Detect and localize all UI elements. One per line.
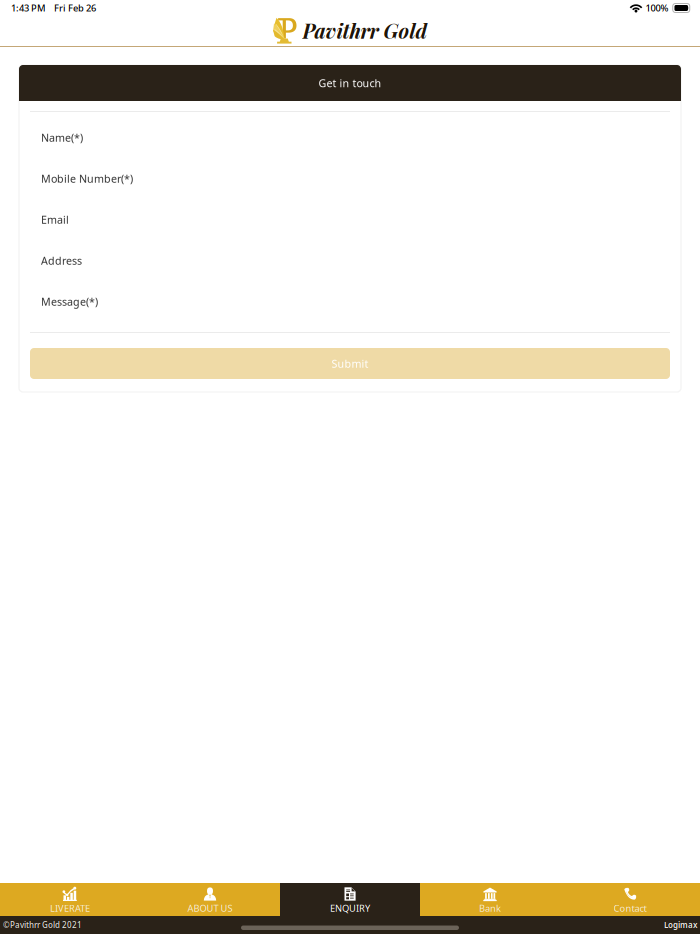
- button[interactable]: Address: [19, 240, 681, 281]
- button[interactable]: Submit: [19, 348, 681, 379]
- staticText: Address: [41, 253, 82, 268]
- button[interactable]: ABOUT US: [140, 883, 280, 916]
- staticText: Submit: [331, 356, 368, 371]
- button[interactable]: ENQUIRY: [280, 883, 420, 916]
- staticText: Email: [41, 212, 69, 227]
- staticText: Pavithrr Gold: [302, 17, 427, 44]
- staticText: Name(*): [41, 130, 83, 145]
- staticText: ABOUT US: [187, 902, 232, 914]
- staticText: Mobile Number(*): [41, 171, 133, 186]
- button[interactable]: Email: [19, 199, 681, 240]
- button[interactable]: Contact: [560, 883, 700, 916]
- staticText: Fri Feb 26: [54, 2, 96, 14]
- staticText: Contact: [613, 902, 646, 914]
- button[interactable]: Name(*): [19, 117, 681, 158]
- staticText: 100%: [645, 2, 668, 14]
- staticText: 1:43 PM: [11, 2, 46, 14]
- staticText: Logimax: [664, 920, 697, 930]
- button[interactable]: Bank: [420, 883, 560, 916]
- staticText: LIVERATE: [50, 902, 90, 914]
- staticText: ENQUIRY: [330, 902, 370, 914]
- button[interactable]: LIVERATE: [0, 883, 140, 916]
- staticText: Message(*): [41, 294, 98, 309]
- button[interactable]: Message(*): [19, 281, 681, 322]
- staticText: ©Pavithrr Gold 2021: [3, 920, 82, 930]
- button[interactable]: Mobile Number(*): [19, 158, 681, 199]
- staticText: Get in touch: [318, 76, 381, 90]
- staticText: Bank: [479, 902, 501, 914]
